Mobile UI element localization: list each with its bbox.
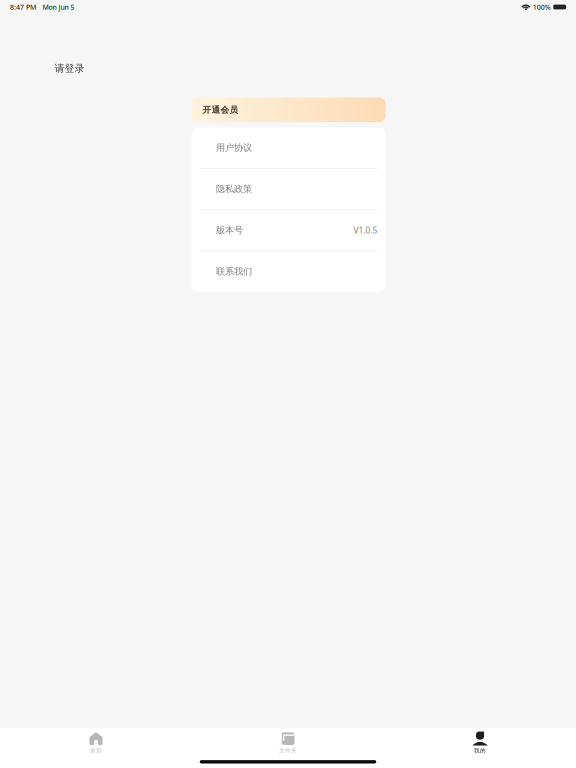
- staticText: 我的: [474, 747, 486, 754]
- staticText: V1.0.5: [353, 224, 377, 236]
- staticText: Mon Jun 5: [42, 2, 74, 12]
- staticText: 联系我们: [216, 266, 252, 277]
- button[interactable]: 隐私政策: [191, 169, 385, 209]
- staticText: 8:47 PM: [10, 2, 36, 12]
- staticText: 首页: [90, 747, 102, 754]
- staticText: 开通会员: [202, 104, 238, 115]
- button[interactable]: 用户协议: [191, 128, 385, 168]
- staticText: 请登录: [54, 62, 84, 75]
- button[interactable]: 我的: [384, 728, 576, 757]
- button[interactable]: 文件夹: [192, 728, 384, 757]
- staticText: 用户协议: [216, 142, 252, 154]
- staticText: 隐私政策: [216, 183, 252, 195]
- staticText: 100%: [533, 2, 551, 12]
- staticText: 文件夹: [279, 747, 297, 754]
- button[interactable]: 联系我们: [191, 251, 385, 292]
- staticText: 版本号: [216, 224, 243, 236]
- button[interactable]: 开通会员: [191, 98, 385, 122]
- button[interactable]: 版本号: [191, 210, 385, 250]
- button[interactable]: 首页: [0, 728, 192, 757]
